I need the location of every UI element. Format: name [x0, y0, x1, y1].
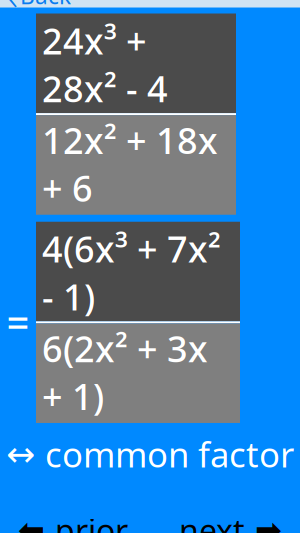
staticText: 6(2x² + 3x + 1) [42, 324, 208, 420]
staticText: prior [55, 509, 128, 533]
staticText: ➡ [255, 512, 282, 533]
button[interactable]: ‹ [0, 0, 79, 22]
staticText: 4(6x³ + 7x² - 1) [42, 225, 221, 320]
staticText: common factor [45, 431, 294, 477]
staticText: next [179, 509, 245, 533]
staticText: ⬅ [18, 512, 45, 533]
staticText: Back [20, 0, 71, 11]
staticText: ↔ [6, 434, 35, 474]
staticText: ‹ [8, 0, 18, 20]
staticText: 24x³ + 28x² - 4 [42, 16, 168, 112]
staticText: = [6, 296, 29, 349]
button[interactable]: ⬅ [8, 505, 138, 533]
staticText: 12x² + 18x + 6 [42, 116, 218, 212]
button[interactable]: next [169, 505, 292, 533]
